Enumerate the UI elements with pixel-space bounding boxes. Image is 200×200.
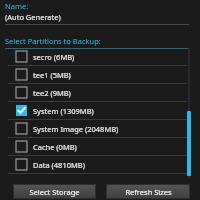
- staticText: Select Partitions to Backup:: [5, 36, 101, 46]
- other: Not selected: [16, 159, 27, 170]
- other: Not selected: [16, 51, 27, 62]
- staticText: Cache (0MB): [33, 142, 77, 152]
- staticText: Name:: [5, 1, 29, 11]
- other: Not selected: [16, 123, 27, 134]
- staticText: tee1 (5MB): [33, 70, 71, 80]
- staticText: System Image (2048MB): [33, 124, 119, 134]
- button[interactable]: Not selected: [0, 138, 187, 156]
- button[interactable]: Not selected: [0, 66, 187, 84]
- other: Not selected: [16, 141, 27, 152]
- button[interactable]: (Auto Generate): [5, 12, 189, 25]
- staticText: (Auto Generate): [5, 12, 61, 22]
- other: Not selected: [16, 69, 27, 80]
- staticText: secro (6MB): [33, 52, 75, 62]
- button[interactable]: Selected: [0, 102, 187, 120]
- staticText: Refresh Sizes: [125, 187, 172, 197]
- staticText: tee2 (9MB): [33, 88, 71, 98]
- staticText: Select Storage: [29, 187, 80, 197]
- button[interactable]: Refresh Sizes: [106, 184, 190, 199]
- button[interactable]: Not selected: [0, 120, 187, 138]
- staticText: System (1309MB): [33, 106, 94, 116]
- button[interactable]: Not selected: [0, 84, 187, 102]
- button[interactable]: Select Storage: [13, 184, 96, 199]
- staticText: Data (4810MB): [33, 160, 85, 170]
- other: Selected: [16, 105, 27, 116]
- button[interactable]: Not selected: [0, 156, 187, 174]
- button[interactable]: Not selected: [0, 48, 187, 66]
- other: Not selected: [16, 87, 27, 98]
